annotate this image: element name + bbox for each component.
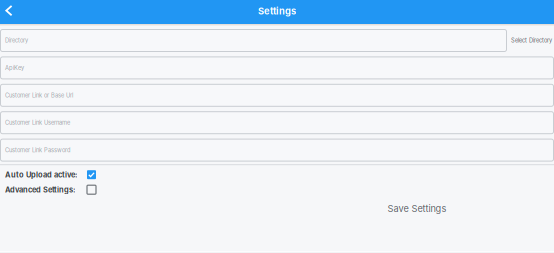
staticText: Save Settings	[387, 203, 446, 214]
button[interactable]: Back	[0, 0, 20, 24]
staticText: Select Directory	[511, 37, 552, 44]
button[interactable]: Customer Link Password	[0, 139, 554, 162]
staticText: Customer Link Password	[5, 147, 71, 153]
staticText: Advanced Settings:	[5, 185, 75, 194]
staticText: Directory	[5, 37, 28, 44]
button[interactable]: Directory	[0, 29, 507, 52]
button[interactable]: Select Directory	[507, 29, 554, 52]
button[interactable]: Customer Link Username	[0, 111, 554, 134]
button[interactable]: Auto Upload active:	[0, 167, 96, 182]
staticText: Settings	[258, 5, 296, 17]
button[interactable]: Advanced Settings:	[0, 182, 96, 197]
staticText: Customer Link Username	[5, 119, 70, 126]
button[interactable]: ApiKey	[0, 56, 554, 79]
button[interactable]: Customer Link or Base Url	[0, 84, 554, 107]
staticText: Customer Link or Base Url	[5, 92, 73, 99]
staticText: Auto Upload active:	[5, 170, 77, 179]
staticText: ApiKey	[5, 64, 24, 71]
button[interactable]: Save Settings	[379, 199, 454, 218]
